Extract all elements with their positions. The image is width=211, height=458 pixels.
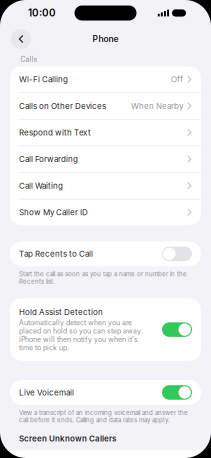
button[interactable]: Show My Caller ID bbox=[10, 199, 201, 225]
staticText: Wi-Fi Calling bbox=[19, 74, 68, 84]
staticText: When Nearby bbox=[131, 101, 183, 111]
staticText: Hold Assist Detection bbox=[19, 307, 103, 317]
staticText: Phone bbox=[92, 34, 118, 44]
staticText: 10:00 bbox=[28, 7, 56, 19]
button[interactable]: Call Waiting bbox=[10, 173, 201, 199]
staticText: Automatically detect when you are placed… bbox=[19, 318, 143, 352]
button[interactable]: Live Voicemail bbox=[10, 380, 201, 405]
staticText: Calls bbox=[20, 55, 37, 63]
staticText: Respond with Text bbox=[19, 128, 91, 137]
staticText: Live Voicemail bbox=[19, 388, 74, 397]
button[interactable]: Respond with Text bbox=[10, 120, 201, 146]
button[interactable]: Wi-Fi Calling bbox=[10, 66, 201, 92]
staticText: Call Waiting bbox=[19, 181, 63, 191]
staticText: Show My Caller ID bbox=[19, 207, 88, 217]
button[interactable]: Hold Assist Detection bbox=[10, 298, 201, 361]
staticText: Call Forwarding bbox=[19, 154, 78, 164]
staticText: Tap Recents to Call bbox=[19, 249, 93, 259]
button[interactable]: Call Forwarding bbox=[10, 146, 201, 172]
staticText: Off bbox=[171, 74, 183, 84]
staticText: Screen Unknown Callers bbox=[19, 434, 116, 443]
button[interactable]: Tap Recents to Call bbox=[10, 241, 201, 266]
staticText: View a transcript of an incoming voicema… bbox=[19, 409, 188, 424]
staticText: Start the call as soon as you tap a name… bbox=[19, 270, 187, 285]
button[interactable]: Back bbox=[11, 29, 31, 49]
staticText: Calls on Other Devices bbox=[19, 101, 106, 111]
button[interactable]: Calls on Other Devices bbox=[10, 93, 201, 119]
